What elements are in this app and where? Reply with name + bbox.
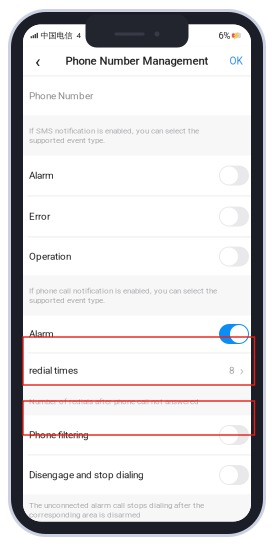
button[interactable]: Alarm <box>23 155 251 195</box>
staticText: 4 <box>72 31 80 40</box>
staticText: If SMS notification is enabled, you can … <box>29 126 199 145</box>
button[interactable]: Phone Number <box>23 76 251 115</box>
staticText: ⚡ <box>232 32 240 39</box>
button[interactable]: Alarm <box>23 315 251 352</box>
staticText: Phone Number Management <box>65 54 208 68</box>
staticText: Number of redials after phone call not a… <box>29 397 199 406</box>
staticText: The unconnected alarm call stops dialing… <box>29 501 204 519</box>
staticText: › <box>239 362 243 379</box>
staticText: Phone Number <box>29 90 93 102</box>
button[interactable]: OK <box>225 48 247 74</box>
staticText: Phone filtering <box>29 429 89 441</box>
staticText: 中国电信 <box>38 30 72 41</box>
staticText: Alarm <box>29 170 54 181</box>
staticText: Alarm <box>29 328 54 340</box>
staticText: Operation <box>29 251 71 262</box>
staticText: Disengage and stop dialing <box>29 469 144 481</box>
staticText: OK <box>229 55 242 67</box>
staticText: 8 <box>229 365 235 376</box>
staticText: 6% <box>218 30 230 41</box>
button[interactable]: Operation <box>23 237 251 275</box>
button[interactable]: Phone filtering <box>23 415 251 454</box>
staticText: Error <box>29 211 50 222</box>
button[interactable]: Back <box>27 48 49 74</box>
staticText: ‹ <box>35 50 41 72</box>
staticText: redial times <box>29 365 78 376</box>
button[interactable]: Disengage and stop dialing <box>23 455 251 494</box>
button[interactable]: redial times <box>23 353 251 387</box>
staticText: If phone call notification is enabled, y… <box>29 286 217 305</box>
button[interactable]: Error <box>23 196 251 236</box>
